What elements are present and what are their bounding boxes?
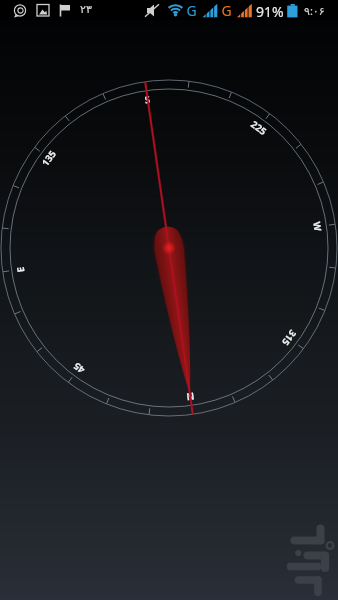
button[interactable]: Compass dial	[0, 0, 338, 600]
